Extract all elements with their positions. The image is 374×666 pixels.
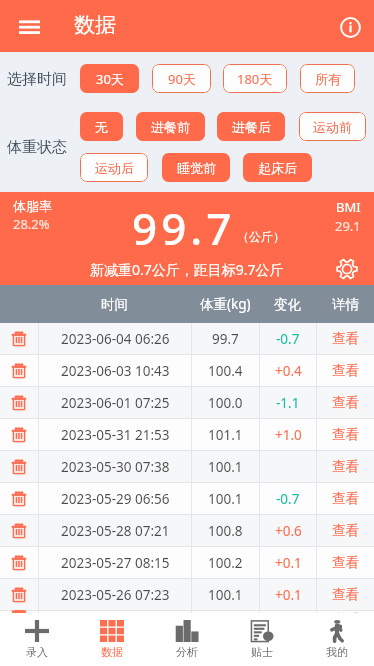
button[interactable]: 我的 [299,613,374,666]
staticText: 查看 [332,522,359,539]
button[interactable]: 运动后 [80,153,148,182]
staticText: 180天 [237,70,273,88]
staticText: 2023-05-29 06:56 [61,490,170,508]
button[interactable]: 查看 [317,579,374,610]
staticText: 100.4 [208,362,243,380]
button[interactable]: 睡觉前 [162,153,230,182]
button[interactable]: Delete [0,547,38,578]
staticText: 睡觉前 [177,160,216,176]
button[interactable]: Menu [7,4,51,48]
staticText: 进餐后 [232,119,271,135]
staticText: 28.2% [13,215,50,233]
staticText: 100.2 [208,554,243,572]
staticText: 2023-05-30 07:38 [61,458,170,476]
button[interactable]: 贴士 [224,613,299,666]
button[interactable]: Info [332,9,368,45]
staticText: +0.4 [275,362,302,380]
staticText: 30天 [96,70,124,88]
button[interactable]: Delete [0,419,38,450]
button[interactable]: 180天 [223,64,287,93]
staticText: 100.0 [208,394,243,412]
staticText: 运动后 [95,160,134,176]
staticText: 查看 [332,586,359,603]
button[interactable]: 30天 [80,64,139,93]
button[interactable]: 查看 [317,451,374,482]
staticText: 查看 [332,394,359,411]
staticText: 100.1 [208,458,243,476]
button[interactable]: Delete [0,323,38,354]
button[interactable]: 起床后 [243,153,312,182]
staticText: 99.7 [132,198,236,258]
staticText: 详情 [332,296,359,313]
staticText: 99.7 [212,330,239,348]
staticText: 新减重0.7公斤，距目标9.7公斤 [90,260,284,279]
staticText: 所有 [315,71,341,87]
staticText: -0.7 [276,490,300,508]
staticText: +0.1 [275,586,302,604]
button[interactable]: 进餐前 [136,112,205,141]
staticText: 查看 [332,554,359,571]
button[interactable]: 无 [80,112,123,141]
button[interactable]: Delete [0,515,38,546]
button[interactable]: Delete [0,387,38,418]
staticText: 2023-06-01 07:25 [61,394,170,412]
staticText: 变化 [274,296,301,313]
staticText: 录入 [26,645,48,659]
button[interactable]: 分析 [149,613,224,666]
staticText: 查看 [332,458,359,475]
staticText: 数据 [74,12,116,38]
button[interactable]: 所有 [300,64,355,93]
staticText: 查看 [332,362,359,379]
staticText: 29.1 [335,217,361,235]
button[interactable]: 查看 [317,323,374,354]
staticText: 2023-06-03 10:43 [61,362,170,380]
staticText: 2023-05-27 08:15 [61,554,170,572]
button[interactable]: Delete [0,611,38,613]
button[interactable]: 运动前 [299,112,366,141]
staticText: 2023-06-04 06:26 [61,330,170,348]
button[interactable]: Delete [0,483,38,514]
staticText: 运动前 [313,119,352,135]
staticText: 体脂率 [13,198,52,214]
button[interactable]: 查看 [317,419,374,450]
staticText: 起床后 [258,160,297,176]
staticText: 体重状态 [7,138,67,157]
staticText: 分析 [176,645,198,659]
staticText: 2023-05-31 21:53 [61,426,170,444]
staticText: （公斤） [237,229,285,244]
staticText: 查看 [332,611,359,613]
staticText: 90天 [168,70,196,88]
staticText: 100.1 [208,490,243,508]
staticText: -0.7 [276,330,300,348]
staticText: 时间 [101,296,128,313]
staticText: 数据 [101,645,123,659]
button[interactable]: 进餐后 [217,112,285,141]
staticText: 查看 [332,490,359,507]
staticText: 无 [95,119,108,135]
staticText: 我的 [326,645,348,659]
button[interactable]: 查看 [317,547,374,578]
staticText: 体重(kg) [200,295,251,313]
button[interactable]: 90天 [152,64,211,93]
button[interactable]: 查看 [317,483,374,514]
staticText: +1.0 [275,426,302,444]
button[interactable]: 查看 [317,611,374,613]
button[interactable]: 查看 [317,355,374,386]
staticText: 选择时间 [7,70,67,89]
button[interactable]: Settings [333,255,361,283]
staticText: 查看 [332,330,359,347]
button[interactable]: 录入 [0,613,74,666]
button[interactable]: Delete [0,579,38,610]
staticText: BMI [336,198,361,216]
button[interactable]: Delete [0,451,38,482]
button[interactable]: 查看 [317,387,374,418]
staticText: 2023-05-26 07:23 [61,586,170,604]
button[interactable]: 数据 [74,613,149,666]
staticText: 100.8 [208,522,243,540]
button[interactable]: 查看 [317,515,374,546]
button[interactable]: Delete [0,355,38,386]
staticText: -1.1 [276,394,300,412]
staticText: 查看 [332,426,359,443]
staticText: 贴士 [251,645,273,659]
